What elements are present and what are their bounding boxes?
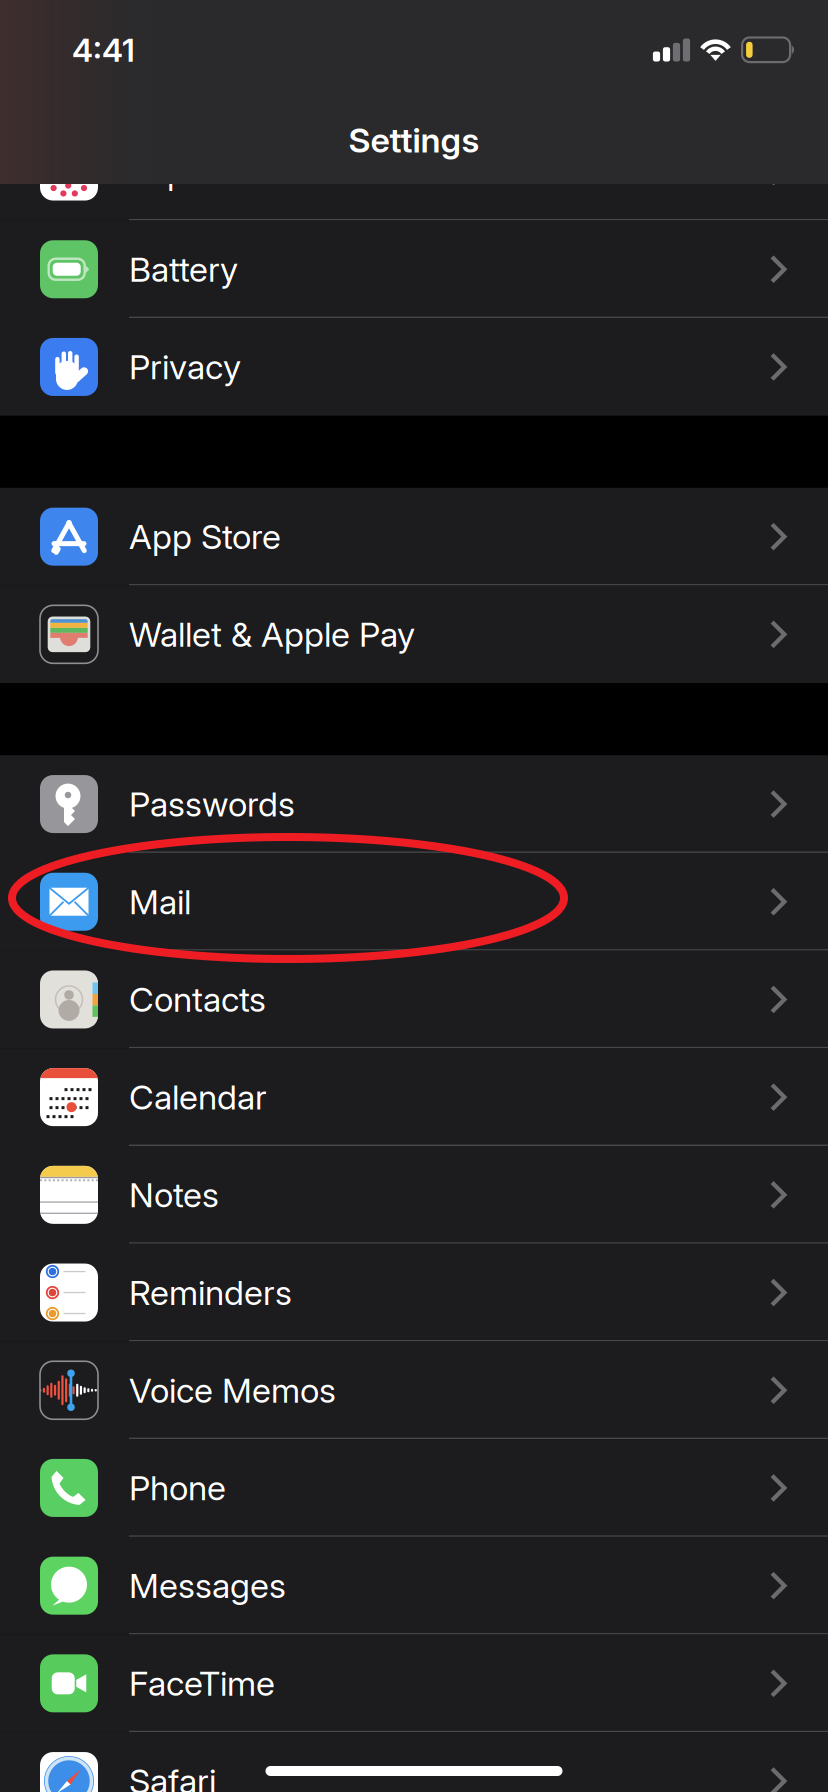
staticText: App Store xyxy=(129,516,281,557)
button[interactable]: Contacts xyxy=(0,951,828,1048)
staticText: Wallet & Apple Pay xyxy=(129,614,415,655)
staticText: Notes xyxy=(129,1174,219,1215)
staticText: Mail xyxy=(129,881,191,922)
button[interactable]: Battery xyxy=(0,220,828,318)
button[interactable]: Notes xyxy=(0,1146,828,1244)
staticText: Calendar xyxy=(129,1076,267,1118)
staticText: Phone xyxy=(129,1467,226,1509)
staticText: Contacts xyxy=(129,979,266,1020)
button[interactable]: Reminders xyxy=(0,1244,828,1341)
button[interactable]: Mail xyxy=(0,853,828,951)
staticText: Passwords xyxy=(129,783,295,825)
staticText: Reminders xyxy=(129,1272,292,1313)
button[interactable]: Wallet & Apple Pay xyxy=(0,585,828,683)
staticText: FaceTime xyxy=(129,1663,275,1704)
staticText: Exposure Notifications xyxy=(129,151,471,192)
button[interactable]: Passwords xyxy=(0,755,828,853)
button[interactable]: Voice Memos xyxy=(0,1341,828,1439)
staticText: Settings xyxy=(348,119,479,161)
button[interactable]: FaceTime xyxy=(0,1634,828,1732)
button[interactable]: Messages xyxy=(0,1537,828,1634)
button[interactable]: Phone xyxy=(0,1439,828,1537)
button[interactable]: Privacy xyxy=(0,318,828,416)
button[interactable]: Exposure Notifications xyxy=(0,123,828,220)
button[interactable]: App Store xyxy=(0,488,828,585)
staticText: Messages xyxy=(129,1565,286,1606)
staticText: Safari xyxy=(129,1760,216,1792)
button[interactable]: Calendar xyxy=(0,1048,828,1146)
staticText: 4:41 xyxy=(72,31,135,69)
staticText: Voice Memos xyxy=(129,1370,336,1411)
button[interactable]: Safari xyxy=(0,1732,828,1792)
staticText: Privacy xyxy=(129,346,241,388)
staticText: Battery xyxy=(129,249,238,290)
